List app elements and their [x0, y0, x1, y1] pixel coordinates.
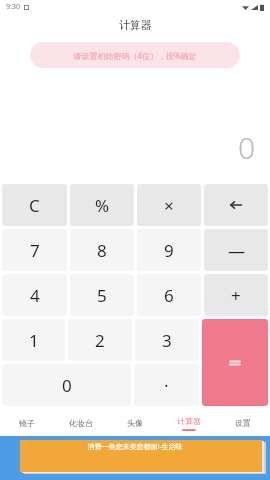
- staticText: 0: [62, 374, 72, 397]
- button[interactable]: [202, 319, 268, 406]
- button[interactable]: 3: [135, 319, 199, 361]
- staticText: C: [29, 194, 40, 217]
- button[interactable]: +: [204, 274, 268, 316]
- button[interactable]: C: [2, 184, 67, 226]
- staticText: +: [231, 284, 241, 307]
- staticText: 计算器: [119, 18, 152, 32]
- button[interactable]: 设置: [216, 410, 270, 436]
- staticText: 3: [162, 329, 172, 352]
- button[interactable]: 7: [2, 229, 67, 271]
- button[interactable]: 9: [137, 229, 201, 271]
- staticText: 0: [238, 127, 256, 168]
- staticText: 头像: [127, 418, 143, 428]
- staticText: 设置: [235, 418, 251, 428]
- staticText: 镜子: [19, 418, 35, 428]
- staticText: 请设置初始密码（4位），按%确定: [73, 50, 197, 61]
- button[interactable]: 6: [137, 274, 201, 316]
- button[interactable]: 0: [2, 364, 131, 406]
- staticText: 9:30: [6, 2, 20, 12]
- button[interactable]: %: [70, 184, 134, 226]
- button[interactable]: 4: [2, 274, 67, 316]
- button[interactable]: 1: [2, 319, 65, 361]
- button[interactable]: Backspace: [204, 184, 268, 226]
- button[interactable]: 2: [68, 319, 132, 361]
- button[interactable]: 镜子: [0, 410, 54, 436]
- staticText: 1: [29, 329, 39, 352]
- staticText: 6: [164, 284, 174, 307]
- button[interactable]: ·: [134, 364, 199, 406]
- button[interactable]: 化妆台: [54, 410, 108, 436]
- staticText: 化妆台: [69, 418, 93, 428]
- staticText: 5: [97, 284, 107, 307]
- button[interactable]: —: [204, 229, 268, 271]
- staticText: ·: [164, 374, 169, 397]
- button[interactable]: 请设置初始密码（4位），按%确定: [30, 42, 240, 68]
- staticText: 4: [30, 284, 40, 307]
- staticText: —: [228, 239, 245, 262]
- staticText: 2: [95, 329, 105, 352]
- button[interactable]: 头像: [108, 410, 162, 436]
- button[interactable]: 计算器: [162, 410, 216, 436]
- button[interactable]: Advertisement: [0, 436, 270, 480]
- staticText: 消费一类您来卖您都测!-生活味: [87, 442, 183, 452]
- staticText: 7: [30, 239, 40, 262]
- staticText: 8: [97, 239, 107, 262]
- staticText: 计算器: [177, 416, 201, 426]
- button[interactable]: 5: [70, 274, 134, 316]
- button[interactable]: 8: [70, 229, 134, 271]
- staticText: %: [95, 194, 110, 217]
- staticText: 9: [164, 239, 174, 262]
- staticText: ×: [164, 194, 174, 217]
- button[interactable]: ×: [137, 184, 201, 226]
